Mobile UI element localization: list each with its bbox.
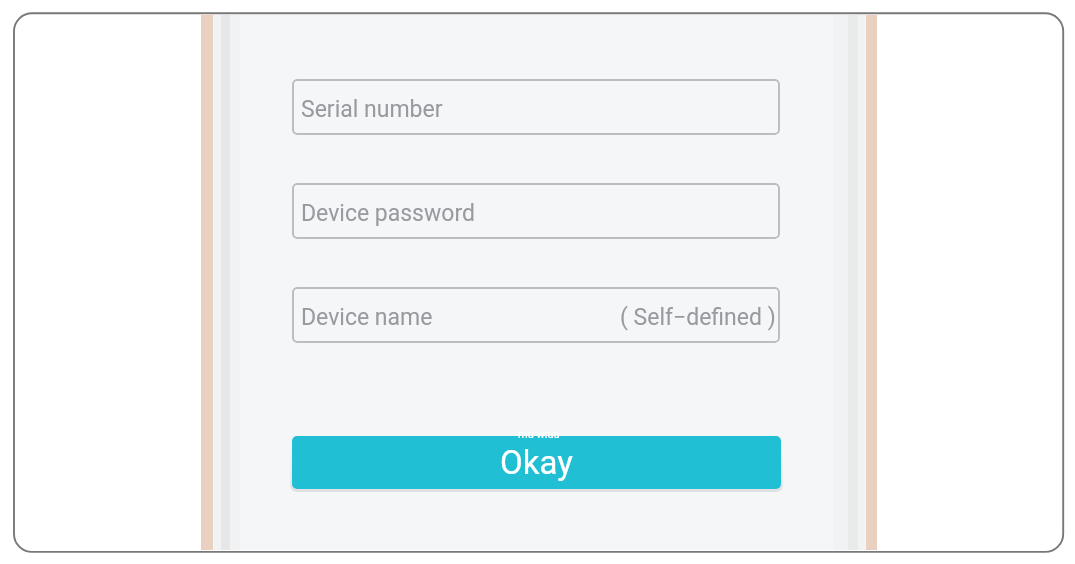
button[interactable]: Device name xyxy=(292,287,780,343)
staticText: Okay xyxy=(500,443,573,482)
staticText: Serial number xyxy=(301,96,443,123)
staticText: Device name xyxy=(301,304,433,331)
staticText: Device password xyxy=(301,200,475,227)
staticText: mu wiuu xyxy=(518,428,560,441)
button[interactable]: Serial number xyxy=(292,79,780,135)
button[interactable]: Device password xyxy=(292,183,780,239)
staticText: ( Self−defined ) xyxy=(620,304,776,331)
button[interactable]: Okay xyxy=(292,436,781,489)
